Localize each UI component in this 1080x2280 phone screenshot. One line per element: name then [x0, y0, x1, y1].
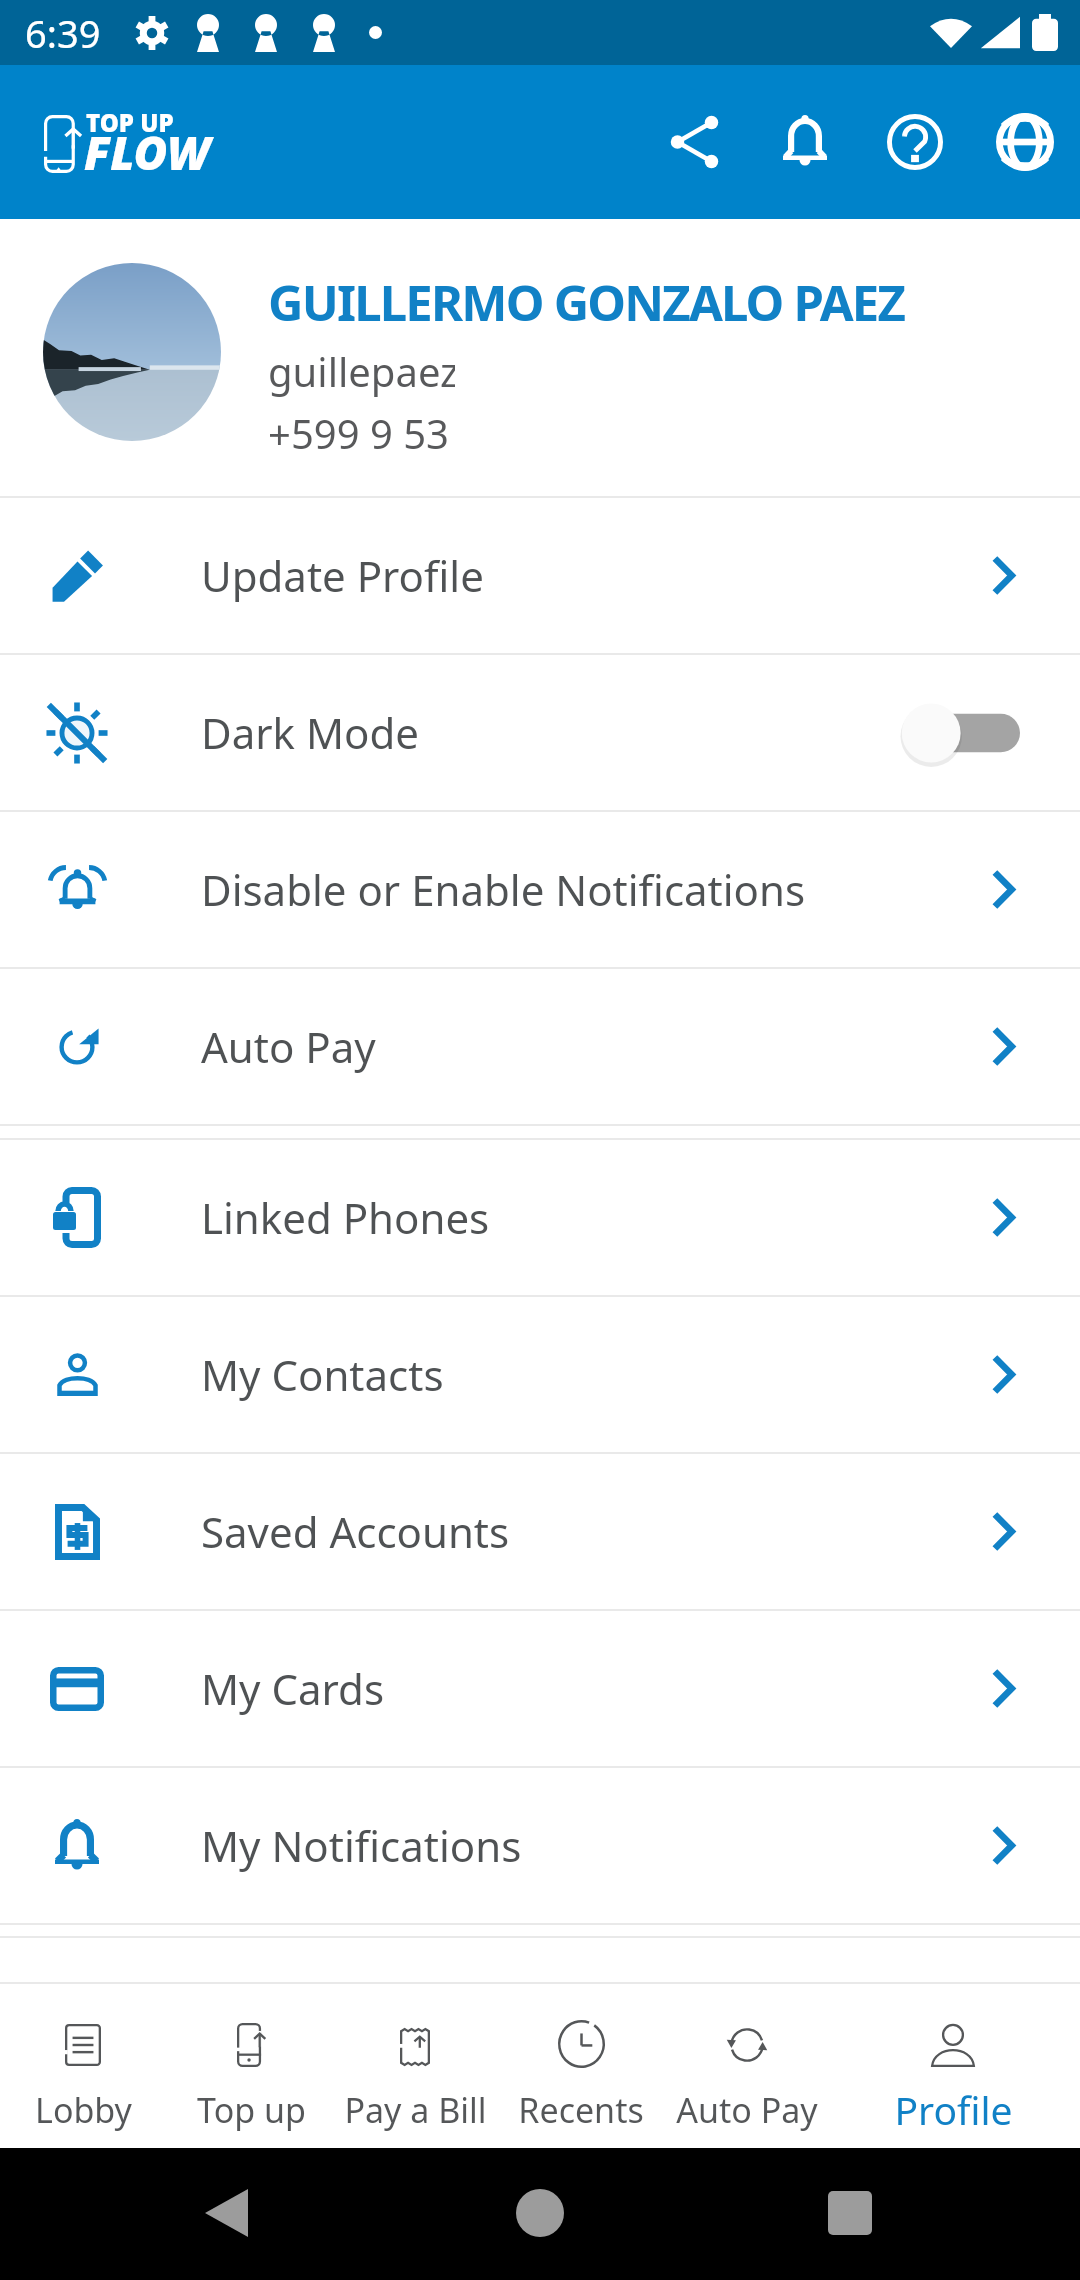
button[interactable]: Auto Pay — [668, 1984, 826, 2148]
staticText: TOP UP — [86, 106, 174, 139]
button[interactable]: GUILLERMO GONZALO PAEZ — [0, 219, 1080, 496]
staticText: +599 9 53 — [268, 406, 449, 460]
staticText: Pay a Bill — [344, 2087, 487, 2133]
staticText: guillepaez — [268, 344, 455, 398]
button[interactable]: Linked Phones — [0, 1140, 1080, 1295]
staticText: My Cards — [201, 1660, 384, 1717]
staticText: Dark Mode — [201, 704, 419, 761]
staticText: Top up — [197, 2087, 306, 2133]
staticText: Linked Phones — [201, 1189, 490, 1246]
staticText: Auto Pay — [201, 1018, 376, 1075]
staticText: FLOW — [84, 121, 210, 184]
button[interactable]: Auto Pay — [0, 969, 1080, 1124]
button[interactable]: Share — [651, 98, 739, 186]
button[interactable]: Saved Accounts — [0, 1454, 1080, 1609]
button[interactable]: Notifications — [761, 98, 849, 186]
button[interactable]: Language — [981, 98, 1069, 186]
button[interactable]: Profile — [826, 1984, 1080, 2148]
staticText: Disable or Enable Notifications — [201, 861, 806, 918]
button[interactable]: My Cards — [0, 1611, 1080, 1766]
staticText: Profile — [894, 2083, 1013, 2136]
staticText: My Contacts — [201, 1346, 444, 1403]
staticText: Auto Pay — [676, 2087, 818, 2133]
staticText: Update Profile — [201, 547, 484, 604]
button[interactable]: Top up — [166, 1984, 336, 2148]
staticText: My Notifications — [201, 1817, 522, 1874]
staticText: Saved Accounts — [201, 1503, 510, 1560]
staticText: GUILLERMO GONZALO PAEZ — [268, 269, 905, 336]
button[interactable]: My Notifications — [0, 1768, 1080, 1923]
button[interactable]: My Contacts — [0, 1297, 1080, 1452]
button[interactable]: Lobby — [0, 1984, 166, 2148]
staticText: 6:39 — [25, 7, 101, 59]
button[interactable]: Disable or Enable Notifications — [0, 812, 1080, 967]
staticText: Lobby — [35, 2087, 132, 2133]
button[interactable]: Pay a Bill — [336, 1984, 494, 2148]
button[interactable]: Update Profile — [0, 498, 1080, 653]
button[interactable]: Dark Mode — [0, 655, 1080, 810]
staticText: Recents — [518, 2087, 644, 2133]
button[interactable]: Recents — [494, 1984, 668, 2148]
button[interactable]: Help — [871, 98, 959, 186]
